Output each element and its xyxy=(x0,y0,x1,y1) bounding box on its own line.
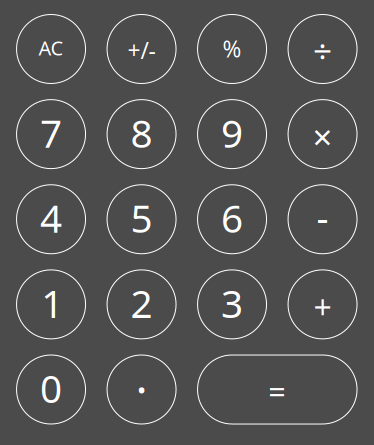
button[interactable]: Minus xyxy=(288,184,358,254)
staticText: % xyxy=(223,33,242,64)
staticText: 5 xyxy=(131,192,153,243)
staticText: 4 xyxy=(40,192,62,243)
staticText: 2 xyxy=(131,277,153,329)
staticText: 7 xyxy=(40,107,62,158)
button[interactable]: Divide xyxy=(288,14,358,84)
button[interactable]: 5 xyxy=(106,184,176,254)
button[interactable]: Equals xyxy=(197,354,358,424)
staticText: 9 xyxy=(221,107,243,158)
button[interactable]: 6 xyxy=(197,184,267,254)
staticText: . xyxy=(136,346,148,406)
button[interactable]: 3 xyxy=(197,269,267,339)
button[interactable]: All clear xyxy=(16,14,86,84)
button[interactable]: Plus xyxy=(288,269,358,339)
button[interactable]: 4 xyxy=(16,184,86,254)
button[interactable]: 7 xyxy=(16,99,86,169)
button[interactable]: Multiply xyxy=(288,99,358,169)
button[interactable]: Toggle sign xyxy=(106,14,176,84)
staticText: 0 xyxy=(40,362,62,414)
button[interactable]: 0 xyxy=(16,354,86,424)
staticText: 8 xyxy=(131,107,153,158)
staticText: + xyxy=(314,285,332,328)
staticText: - xyxy=(317,193,329,242)
staticText: 3 xyxy=(221,277,243,329)
staticText: AC xyxy=(38,34,63,61)
staticText: +/- xyxy=(127,35,155,65)
button[interactable]: Decimal point xyxy=(106,354,176,424)
staticText: ÷ xyxy=(313,28,332,72)
staticText: 1 xyxy=(41,277,63,329)
staticText: 6 xyxy=(221,192,243,243)
button[interactable]: 8 xyxy=(106,99,176,169)
button[interactable]: Percent xyxy=(197,14,267,84)
button[interactable]: 1 xyxy=(16,269,86,339)
staticText: × xyxy=(313,113,333,159)
button[interactable]: 9 xyxy=(197,99,267,169)
staticText: = xyxy=(268,371,286,412)
button[interactable]: 2 xyxy=(106,269,176,339)
